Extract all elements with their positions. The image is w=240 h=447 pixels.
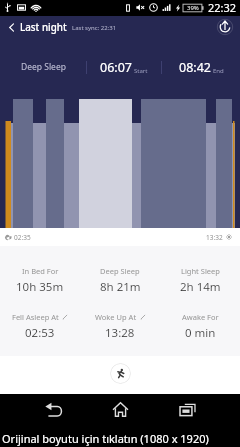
staticText: In Bed For [22, 266, 59, 276]
staticText: Fell Asleep At [12, 312, 59, 322]
staticText: Last sync: 22:31 [72, 24, 117, 32]
button[interactable]: Sync [214, 16, 236, 38]
button[interactable]: Awake For [160, 302, 240, 341]
button[interactable]: Home [87, 394, 154, 424]
staticText: 13:32 [206, 233, 223, 242]
staticText: End [213, 67, 224, 75]
button[interactable]: Back [3, 19, 19, 35]
button[interactable]: In Bed For [0, 246, 80, 295]
button[interactable]: Activity [110, 363, 131, 384]
staticText: 02:53 [25, 325, 55, 341]
button[interactable]: Deep Sleep [80, 246, 160, 295]
staticText: Start [134, 67, 148, 75]
staticText: 0 min [185, 325, 216, 341]
staticText: 06:07 [100, 59, 132, 76]
staticText: Awake For [182, 312, 219, 322]
staticText: 8h 21m [100, 279, 141, 295]
staticText: 13:28 [105, 325, 135, 341]
button[interactable]: Woke Up At [80, 302, 160, 341]
staticText: Woke Up At [95, 312, 137, 322]
staticText: 2h 14m [180, 279, 221, 295]
staticText: Last night [20, 21, 67, 34]
button[interactable]: Fell Asleep At [0, 302, 80, 341]
staticText: Deep Sleep [21, 61, 66, 73]
staticText: 02:35 [14, 233, 31, 242]
staticText: 22:32 [208, 0, 237, 15]
staticText: 10h 35m [16, 279, 64, 295]
staticText: Orijinal boyutu için tıklatın (1080 x 19… [2, 431, 209, 446]
button[interactable]: Light Sleep [160, 246, 240, 295]
button[interactable]: Recent apps [154, 394, 221, 424]
staticText: Deep Sleep [100, 266, 140, 276]
staticText: 39% [187, 4, 199, 12]
button[interactable]: Back [19, 394, 87, 424]
staticText: Light Sleep [181, 266, 220, 276]
staticText: 08:42 [179, 59, 211, 76]
